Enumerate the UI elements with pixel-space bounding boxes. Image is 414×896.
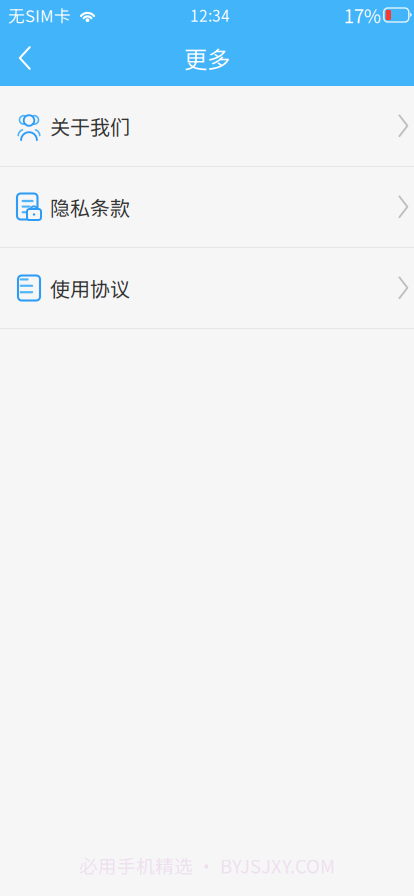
staticText: 隐私条款	[50, 192, 130, 221]
staticText: 使用协议	[50, 273, 130, 302]
staticText: 关于我们	[50, 111, 130, 140]
button[interactable]: Back	[0, 36, 45, 80]
staticText: 17%	[344, 1, 381, 28]
button[interactable]: 隐私条款	[0, 167, 414, 248]
staticText: 12:34	[190, 4, 230, 26]
staticText: 无SIM卡	[8, 3, 71, 27]
staticText: 更多	[184, 41, 230, 75]
button[interactable]: 关于我们	[0, 86, 414, 167]
button[interactable]: 使用协议	[0, 248, 414, 329]
staticText: 必用手机精选 · BYJSJXY.COM	[79, 852, 335, 879]
